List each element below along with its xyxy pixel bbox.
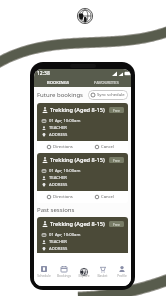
staticText: Free <box>113 222 120 227</box>
staticText: FAVOURITES <box>94 80 119 86</box>
staticText: Cancel <box>101 144 115 150</box>
staticText: Free <box>113 158 120 163</box>
button[interactable]: Directions <box>37 141 82 153</box>
staticText: 01 Apr, 10:00am <box>49 232 81 238</box>
button[interactable]: Schedule <box>34 253 54 286</box>
staticText: Basket <box>97 274 108 278</box>
staticText: TEACHER <box>49 175 67 181</box>
staticText: Directions <box>53 194 73 200</box>
staticText: 01 Apr, 10:00am <box>49 118 81 124</box>
staticText: Trekking (Aged 8-15) <box>50 156 105 164</box>
staticText: Schedule <box>37 274 51 278</box>
staticText: BOOKINGS <box>47 80 70 86</box>
staticText: Free <box>113 108 120 113</box>
button[interactable]: Profile <box>112 253 131 286</box>
staticText: Profile <box>117 274 127 278</box>
staticText: Bookings <box>57 274 71 278</box>
button[interactable]: Cancel <box>82 141 128 153</box>
button[interactable]: Bookings <box>54 253 74 286</box>
staticText: TEACHER <box>49 125 67 131</box>
button[interactable]: FAVOURITES <box>82 78 131 87</box>
staticText: Future bookings <box>37 91 83 99</box>
staticText: Sync schedule <box>97 92 125 98</box>
button[interactable]: Sync schedule <box>88 90 128 100</box>
button[interactable]: Directions <box>37 191 82 203</box>
staticText: Directions <box>53 144 73 150</box>
button[interactable]: Cancel <box>82 191 128 203</box>
button[interactable]: Basket <box>93 253 112 286</box>
staticText: Trekking (Aged 8-15) <box>50 106 105 114</box>
staticText: TEACHER <box>49 239 67 245</box>
staticText: 01 Apr, 10:00am <box>49 168 81 174</box>
staticText: Cancel <box>101 194 115 200</box>
button[interactable]: Trekking (Aged 8-15) <box>37 103 128 141</box>
staticText: 12:38 <box>37 70 50 77</box>
staticText: Trekking (Aged 8-15) <box>50 220 105 228</box>
staticText: ADDRESS <box>49 182 68 188</box>
staticText: ADDRESS <box>49 132 68 138</box>
button[interactable]: Trekking (Aged 8-15) <box>37 217 128 253</box>
staticText: ADDRESS <box>49 246 68 252</box>
staticText: Explore <box>78 274 90 278</box>
button[interactable]: Trekking (Aged 8-15) <box>37 153 128 191</box>
staticText: Past sessions <box>37 206 75 214</box>
button[interactable]: Explore <box>74 253 93 286</box>
button[interactable]: BOOKINGS <box>34 78 82 87</box>
